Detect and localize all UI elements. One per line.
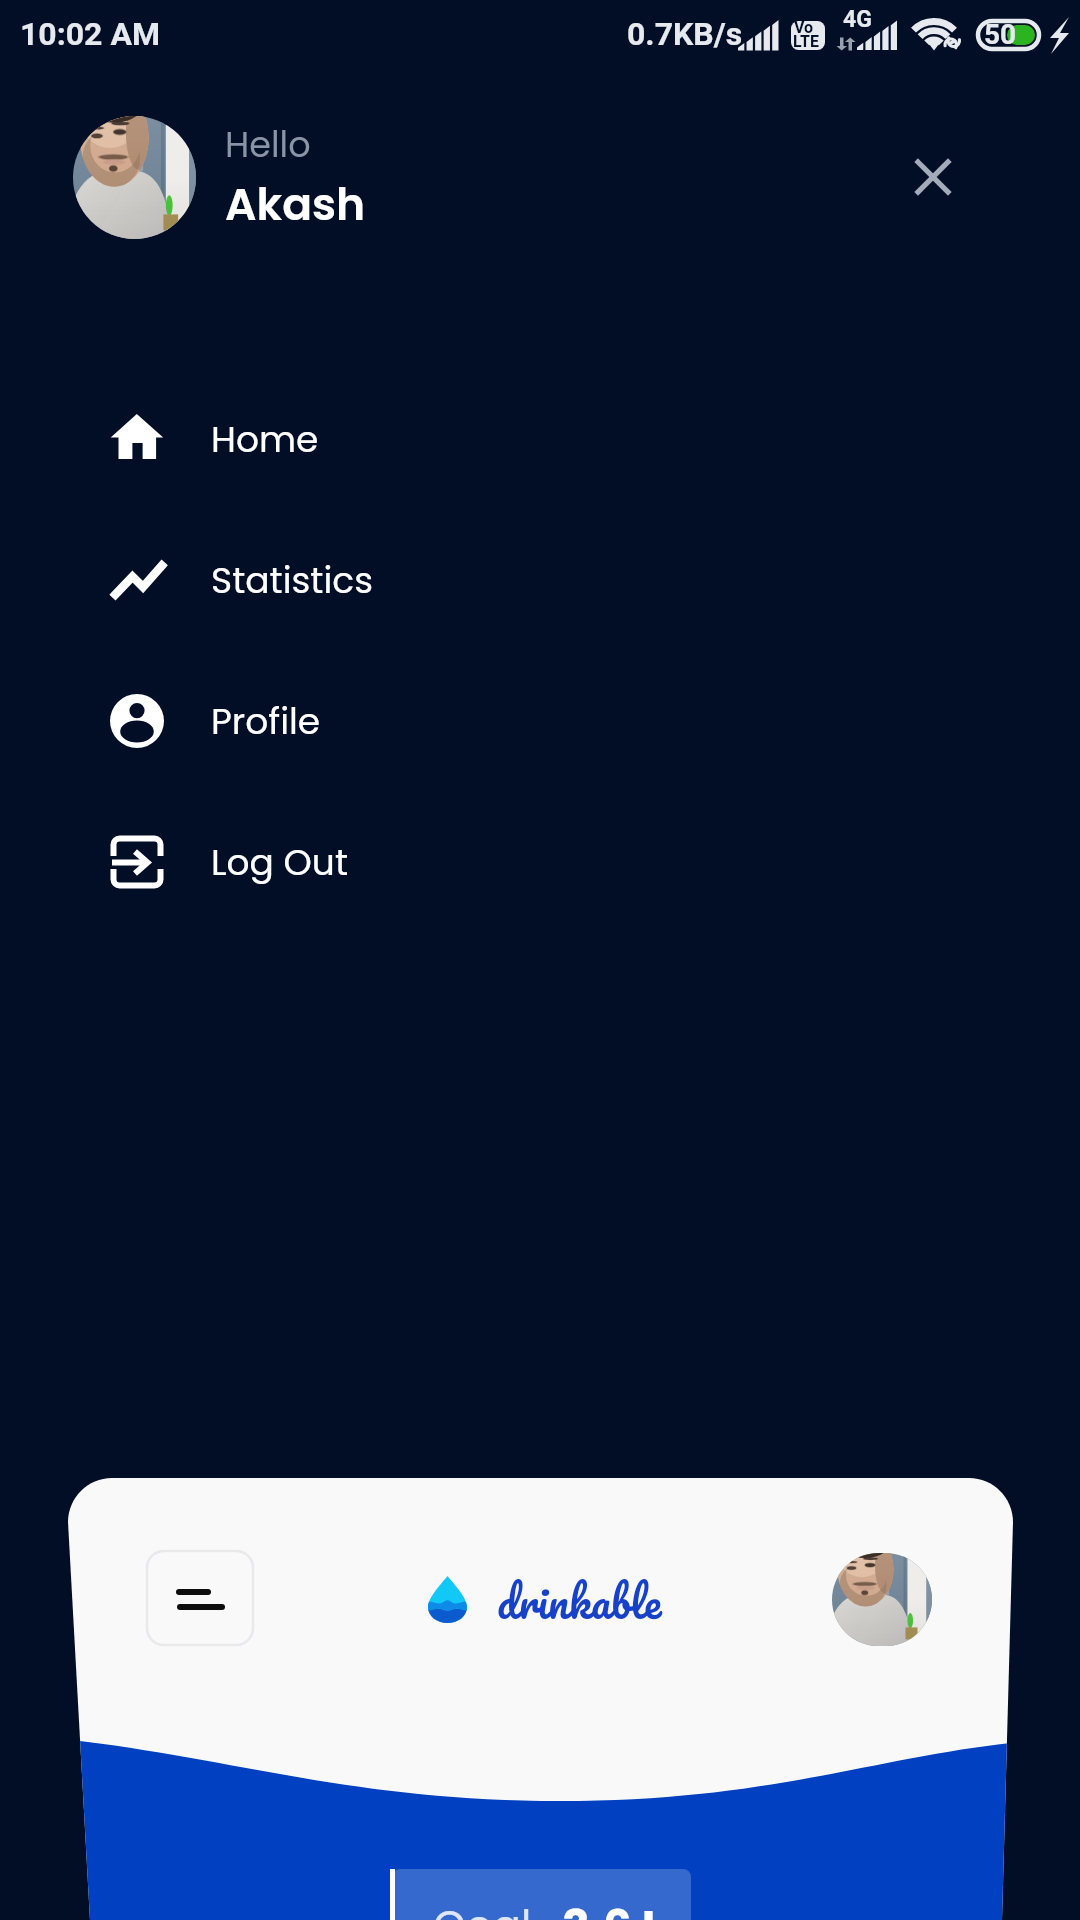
button[interactable]: Statistics (95, 525, 525, 635)
staticText: 4G (843, 6, 872, 33)
staticText: 10:02 AM (20, 15, 161, 53)
staticText: Log Out (211, 837, 348, 887)
button[interactable]: Profile (832, 1553, 932, 1646)
staticText: 0.7KB/s (627, 15, 743, 53)
staticText: Home (211, 414, 319, 464)
button[interactable]: Home (95, 384, 525, 494)
button[interactable]: Profile (95, 666, 525, 776)
staticText: Goal (433, 1897, 532, 1920)
staticText: Akash (225, 174, 366, 236)
staticText: Profile (211, 696, 321, 746)
staticText: drinkable (497, 1564, 662, 1638)
staticText: 3.6 L (562, 1895, 664, 1920)
button[interactable]: Close drawer (893, 137, 973, 217)
button[interactable]: Log Out (95, 807, 525, 917)
staticText: 50 (984, 18, 1017, 51)
staticText: Vo (794, 18, 814, 37)
staticText: Hello (225, 120, 311, 169)
button[interactable]: Open menu (147, 1551, 253, 1645)
staticText: LTE (793, 32, 819, 51)
staticText: Statistics (211, 555, 373, 605)
